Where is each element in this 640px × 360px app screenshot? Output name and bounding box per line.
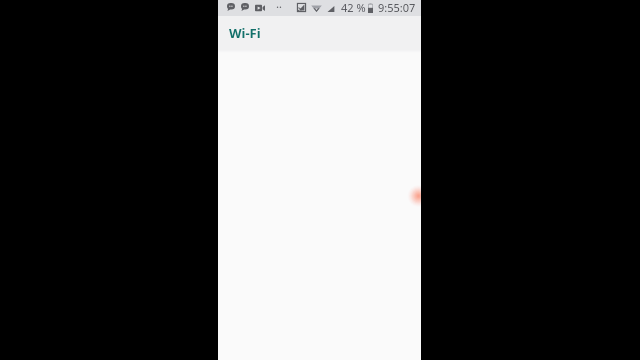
staticText: 9:55:07	[378, 0, 416, 15]
button[interactable]: Wi-Fi	[218, 16, 264, 50]
staticText: Wi-Fi	[229, 24, 261, 42]
staticText: 42 %	[341, 0, 366, 15]
